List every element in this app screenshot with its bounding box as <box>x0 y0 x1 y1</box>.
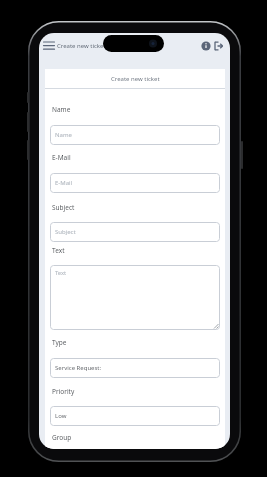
staticText: Service Request: <box>55 364 102 372</box>
staticText: Text <box>55 269 67 277</box>
staticText: Subject <box>55 228 76 236</box>
button[interactable] <box>213 41 224 51</box>
staticText: Create new ticket <box>57 42 106 50</box>
staticText: Text <box>52 246 65 255</box>
button[interactable]: Service Request: <box>50 358 220 378</box>
staticText: Subject <box>52 203 75 212</box>
button[interactable]: Text <box>50 265 220 330</box>
button[interactable]: Low <box>50 406 220 426</box>
staticText: Type <box>52 338 67 347</box>
staticText: E-Mail <box>52 153 71 162</box>
staticText: Name <box>55 131 72 139</box>
button[interactable]: Name <box>50 125 220 145</box>
button[interactable] <box>42 40 58 52</box>
staticText: Group <box>52 433 72 442</box>
button[interactable]: Create new ticket <box>45 69 225 88</box>
staticText: E-Mail <box>55 179 73 187</box>
button[interactable]: E-Mail <box>50 173 220 193</box>
staticText: Name <box>52 105 71 114</box>
button[interactable]: Subject <box>50 222 220 242</box>
staticText: Create new ticket <box>111 75 160 83</box>
staticText: Priority <box>52 387 75 396</box>
button[interactable] <box>201 41 211 51</box>
staticText: Low <box>55 412 67 420</box>
